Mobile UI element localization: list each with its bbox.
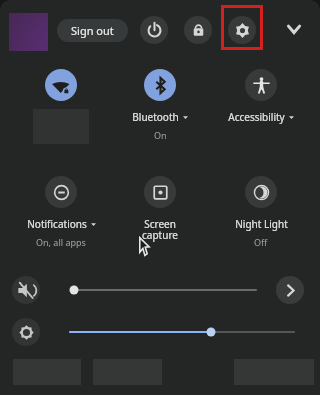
staticText: Night Light <box>235 217 288 231</box>
button[interactable]: Power <box>140 16 168 44</box>
button[interactable]: Night Light <box>216 172 306 247</box>
button[interactable]: Accessibility <box>216 65 306 140</box>
button[interactable] <box>16 65 106 140</box>
button[interactable]: Volume settings <box>276 276 304 304</box>
staticText: On <box>154 129 167 141</box>
staticText: Bluetooth <box>132 110 179 124</box>
button[interactable]: Volume slider <box>68 284 258 296</box>
staticText: Sign out <box>71 23 114 38</box>
staticText: Accessibility <box>228 110 285 124</box>
button[interactable]: Notifications <box>16 172 106 247</box>
button[interactable]: Volume <box>12 276 40 304</box>
button[interactable]: Lock <box>184 16 212 44</box>
button[interactable]: Screen capture <box>115 172 205 247</box>
staticText: Screen capture <box>142 217 178 242</box>
staticText: Notifications <box>27 217 87 231</box>
staticText: On, all apps <box>36 236 86 248</box>
button[interactable]: Bluetooth <box>115 65 205 140</box>
button[interactable]: Sign out <box>57 19 128 42</box>
button[interactable]: Brightness <box>12 318 40 346</box>
staticText: Off <box>254 236 268 248</box>
button[interactable]: Settings <box>228 16 256 44</box>
button[interactable]: Collapse <box>281 16 307 42</box>
button[interactable]: Account <box>9 13 48 51</box>
button[interactable]: Brightness slider <box>68 326 296 338</box>
